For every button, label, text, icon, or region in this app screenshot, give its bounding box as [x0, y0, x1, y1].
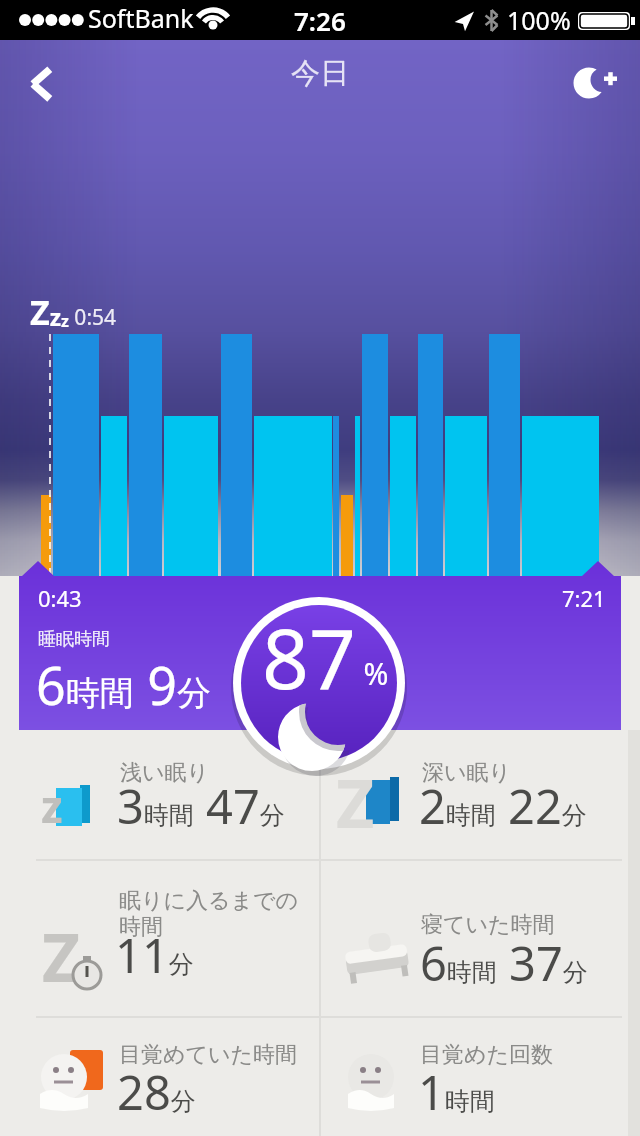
staticText: 11分: [115, 923, 194, 987]
button[interactable]: [14, 50, 70, 114]
staticText: 100%: [507, 3, 571, 37]
staticText: 今日: [291, 55, 349, 92]
staticText: 1時間: [418, 1060, 495, 1124]
staticText: z: [41, 776, 63, 836]
staticText: 3時間 47分: [117, 774, 285, 838]
staticText: 睡眠時間: [38, 628, 110, 651]
staticText: Z: [336, 757, 375, 847]
staticText: SoftBank: [88, 1, 194, 35]
staticText: 2時間 22分: [419, 774, 587, 838]
button[interactable]: [0, 860, 320, 1017]
button[interactable]: [0, 730, 320, 860]
staticText: 浅い眠り: [120, 759, 210, 787]
staticText: 深い眠り: [422, 759, 512, 787]
button[interactable]: [560, 50, 630, 114]
staticText: 目覚めた回数: [420, 1041, 554, 1069]
button[interactable]: [320, 730, 640, 860]
staticText: 6時間 37分: [420, 931, 588, 995]
staticText: 6時間 9分: [36, 649, 212, 720]
staticText: 87 %: [262, 601, 389, 713]
button[interactable]: [0, 1017, 320, 1136]
staticText: 7:21: [562, 583, 606, 613]
staticText: 眠りに入るまでの: [119, 887, 299, 915]
staticText: Zzz 0:54: [30, 289, 117, 335]
staticText: Z: [42, 911, 81, 1001]
staticText: 0:43: [38, 583, 82, 613]
button[interactable]: [320, 1017, 640, 1136]
staticText: 7:26: [294, 3, 346, 38]
staticText: 時間: [119, 913, 163, 941]
staticText: 寝ていた時間: [421, 911, 555, 939]
staticText: 28分: [117, 1060, 196, 1124]
button[interactable]: [320, 860, 640, 1017]
staticText: 目覚めていた時間: [119, 1041, 298, 1069]
